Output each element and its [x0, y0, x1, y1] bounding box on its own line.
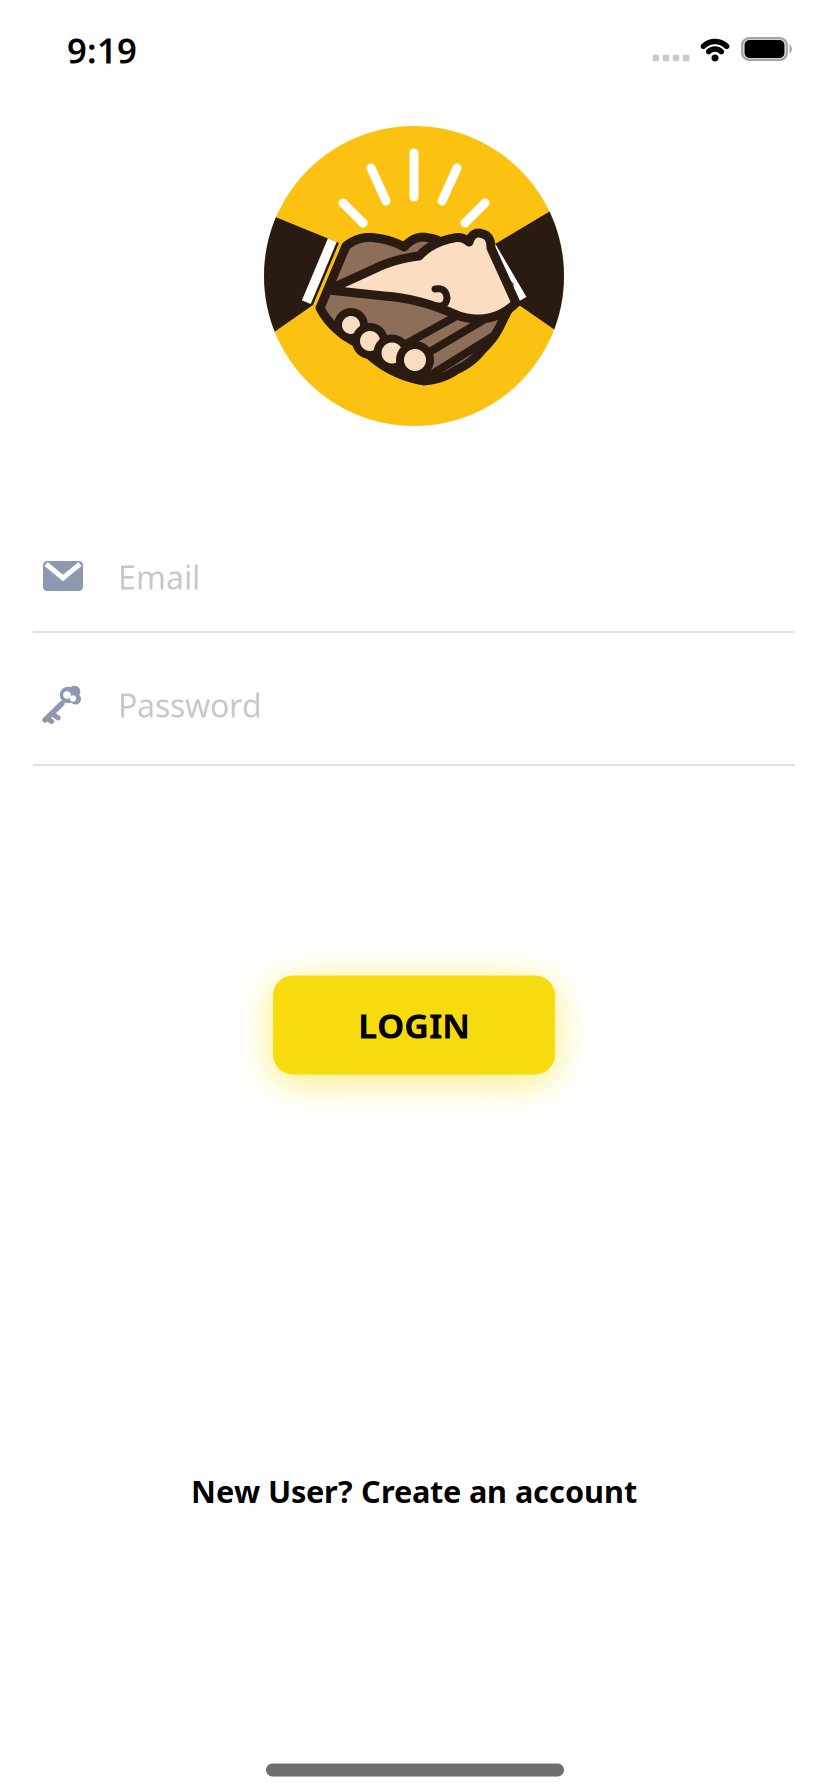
staticText: LOGIN: [358, 1002, 470, 1048]
staticText: Email: [118, 556, 200, 598]
staticText: 9:19: [67, 27, 137, 73]
button[interactable]: LOGIN: [273, 975, 555, 1074]
button[interactable]: New User? Create an account: [191, 1471, 637, 1511]
staticText: Password: [118, 684, 262, 726]
staticText: New User? Create an account: [191, 1471, 637, 1511]
